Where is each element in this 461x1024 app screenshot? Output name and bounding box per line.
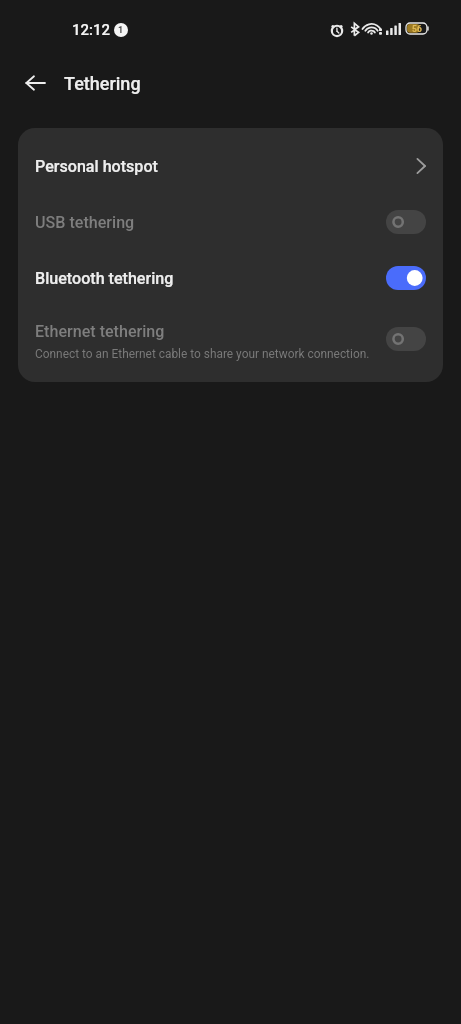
button[interactable]: Off — [386, 327, 426, 351]
staticText: Tethering — [64, 73, 141, 94]
button[interactable]: Back — [13, 61, 57, 105]
staticText: 56 — [412, 24, 422, 34]
button[interactable]: Bluetooth tethering — [18, 250, 443, 306]
button[interactable]: USB tethering — [18, 194, 443, 250]
staticText: Personal hotspot — [35, 157, 158, 176]
staticText: Ethernet tethering — [35, 322, 165, 341]
button[interactable]: Ethernet tethering — [18, 306, 443, 372]
button[interactable]: Off — [386, 210, 426, 234]
button[interactable]: On — [386, 266, 426, 290]
staticText: Bluetooth tethering — [35, 269, 174, 288]
staticText: USB tethering — [35, 213, 135, 232]
staticText: 12:12 — [72, 21, 111, 39]
staticText: 1 — [118, 25, 124, 36]
button[interactable]: Personal hotspot — [18, 138, 443, 194]
staticText: Connect to an Ethernet cable to share yo… — [35, 347, 370, 361]
